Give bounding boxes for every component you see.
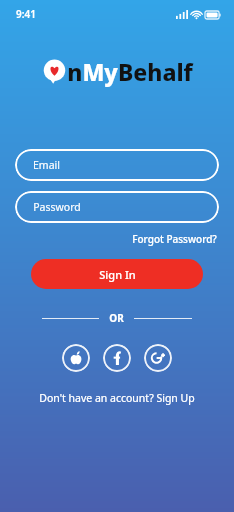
- staticText: Sign In: [99, 267, 136, 282]
- button[interactable]: Password: [15, 191, 219, 223]
- button[interactable]: Sign in with Google: [144, 344, 172, 372]
- staticText: 9:41: [16, 7, 36, 21]
- button[interactable]: Sign In: [31, 259, 203, 289]
- staticText: nMyBehalf: [67, 56, 193, 87]
- staticText: Password: [33, 200, 81, 214]
- staticText: Email: [33, 158, 60, 172]
- button[interactable]: Sign in with Apple: [62, 344, 90, 372]
- button[interactable]: Forgot Password?: [130, 230, 219, 248]
- staticText: Don't have an account? Sign Up: [39, 391, 195, 405]
- button[interactable]: Sign in with Facebook: [103, 344, 131, 372]
- staticText: Forgot Password?: [132, 232, 217, 246]
- button[interactable]: Email: [15, 149, 219, 181]
- staticText: OR: [109, 311, 124, 325]
- button[interactable]: Don't have an account? Sign Up: [33, 388, 201, 408]
